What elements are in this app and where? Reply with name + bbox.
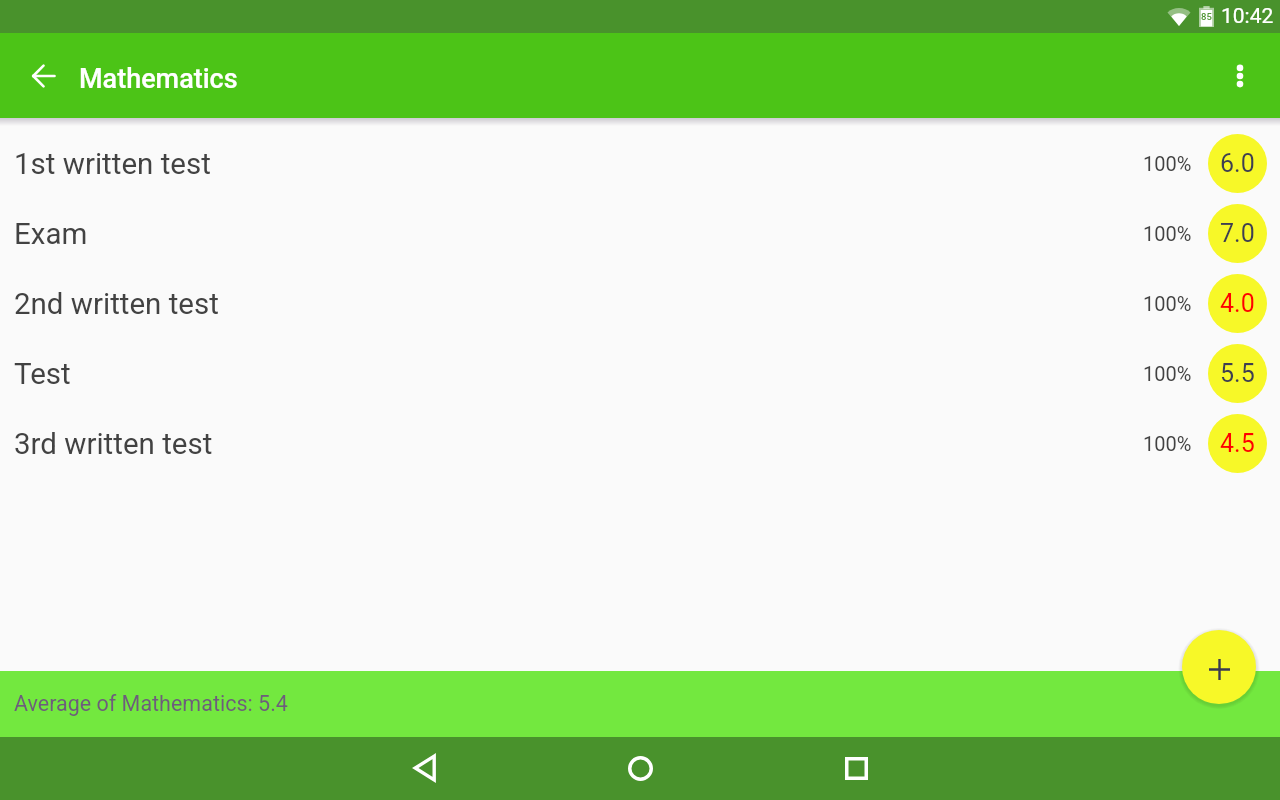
staticText: 10:42: [1221, 4, 1274, 29]
staticText: Exam: [14, 217, 88, 252]
staticText: Test: [14, 357, 71, 392]
staticText: 7.0: [1220, 219, 1255, 248]
button[interactable]: Navigate up: [7, 40, 79, 112]
button[interactable]: 3rd written test: [0, 408, 1280, 478]
staticText: 1st written test: [14, 147, 211, 182]
staticText: 2nd written test: [14, 287, 219, 322]
button[interactable]: Average of Mathematics: 5.4: [0, 671, 1280, 737]
staticText: 3rd written test: [14, 427, 213, 462]
button[interactable]: More options: [1204, 40, 1276, 112]
button[interactable]: 1st written test: [0, 126, 1280, 198]
staticText: 5.5: [1220, 359, 1255, 388]
staticText: 100%: [1143, 292, 1192, 315]
staticText: 4.5: [1220, 429, 1255, 458]
staticText: 100%: [1143, 152, 1192, 175]
button[interactable]: Back: [400, 744, 448, 792]
staticText: 85: [1201, 11, 1212, 22]
button[interactable]: Test: [0, 338, 1280, 408]
button[interactable]: 2nd written test: [0, 268, 1280, 338]
button[interactable]: Add grade: [1182, 630, 1256, 704]
staticText: Mathematics: [79, 63, 238, 95]
staticText: 100%: [1143, 432, 1192, 455]
staticText: 100%: [1143, 362, 1192, 385]
button[interactable]: Home: [616, 744, 664, 792]
staticText: 6.0: [1220, 149, 1255, 178]
staticText: 100%: [1143, 222, 1192, 245]
staticText: 4.0: [1220, 289, 1255, 318]
button[interactable]: Exam: [0, 198, 1280, 268]
staticText: Average of Mathematics: 5.4: [14, 691, 288, 716]
button[interactable]: Recent apps: [832, 744, 880, 792]
